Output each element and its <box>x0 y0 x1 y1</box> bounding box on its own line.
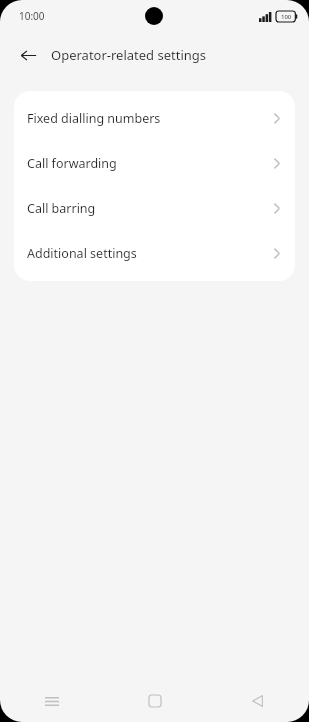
button[interactable]: Call barring <box>14 186 295 231</box>
button[interactable]: Fixed dialling numbers <box>14 96 295 141</box>
button[interactable]: Back <box>206 680 309 722</box>
button[interactable]: Recent apps <box>0 680 103 722</box>
button[interactable]: Call forwarding <box>14 141 295 186</box>
staticText: 10:00 <box>19 9 45 23</box>
button[interactable]: Additional settings <box>14 231 295 276</box>
staticText: Call barring <box>27 200 96 217</box>
button[interactable]: Home <box>103 680 206 722</box>
staticText: Operator-related settings <box>51 46 207 64</box>
staticText: Fixed dialling numbers <box>27 110 161 127</box>
staticText: Additional settings <box>27 245 137 262</box>
staticText: Call forwarding <box>27 155 117 172</box>
staticText: 100 <box>281 13 292 21</box>
button[interactable]: Back <box>13 40 43 70</box>
